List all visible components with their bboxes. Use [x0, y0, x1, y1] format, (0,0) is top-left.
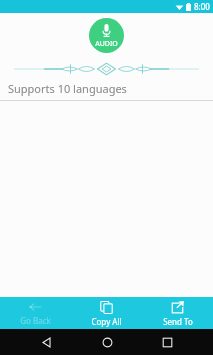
button[interactable]: Recents — [152, 329, 182, 355]
staticText: Send To — [163, 316, 193, 327]
staticText: Supports 10 languages — [8, 81, 127, 96]
button[interactable]: Audio — [89, 18, 124, 53]
staticText: Go Back — [20, 315, 51, 326]
button[interactable]: Go Back — [0, 297, 71, 329]
button[interactable]: Back — [31, 329, 61, 355]
staticText: 8:00 — [194, 1, 210, 12]
button[interactable]: Send To — [142, 297, 213, 329]
staticText: AUDIO — [95, 39, 118, 49]
staticText: Copy All — [91, 316, 122, 327]
button[interactable]: Home — [92, 329, 122, 355]
button[interactable]: Copy All — [71, 297, 142, 329]
